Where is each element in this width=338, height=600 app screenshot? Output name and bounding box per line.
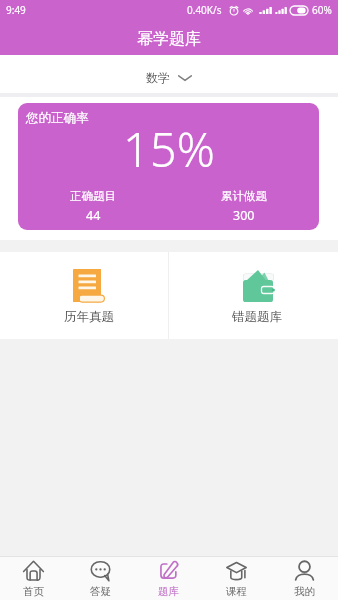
- staticText: 历年真题: [64, 309, 114, 325]
- staticText: 60%: [312, 3, 332, 17]
- staticText: 15%: [123, 117, 215, 181]
- staticText: 9:49: [6, 3, 26, 17]
- staticText: 数学: [146, 70, 170, 85]
- staticText: 错题题库: [232, 309, 282, 325]
- staticText: 我的: [294, 585, 315, 598]
- staticText: 课程: [226, 585, 247, 598]
- button[interactable]: 数学: [0, 55, 338, 93]
- staticText: 幂学题库: [137, 29, 201, 49]
- button[interactable]: 题库: [134, 557, 202, 600]
- staticText: 累计做题: [221, 189, 267, 203]
- staticText: 首页: [23, 585, 44, 598]
- staticText: 答疑: [90, 585, 111, 598]
- staticText: 44: [86, 207, 101, 224]
- button[interactable]: 我的: [270, 557, 338, 600]
- button[interactable]: 错题题库: [169, 252, 338, 339]
- staticText: 300: [233, 207, 255, 224]
- staticText: 您的正确率: [26, 110, 89, 126]
- button[interactable]: 答疑: [67, 557, 134, 600]
- button[interactable]: 课程: [202, 557, 270, 600]
- button[interactable]: 首页: [0, 557, 67, 600]
- staticText: 正确题目: [70, 189, 116, 203]
- button[interactable]: 历年真题: [0, 252, 168, 339]
- staticText: 题库: [158, 585, 179, 598]
- staticText: 0.40K/s: [187, 3, 222, 17]
